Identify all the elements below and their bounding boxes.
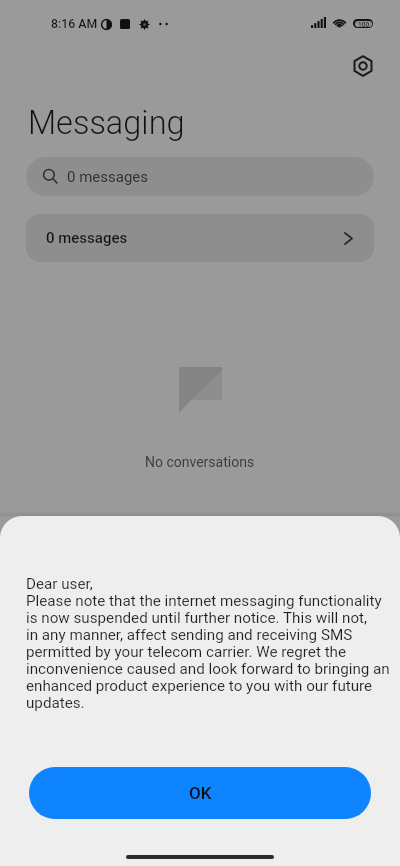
button[interactable]: Settings — [344, 47, 382, 85]
staticText: 8:16 AM — [51, 17, 98, 31]
staticText: No conversations — [145, 454, 255, 470]
staticText: Messaging — [28, 104, 185, 142]
staticText: Dear user, Please note that the internet… — [26, 575, 390, 712]
staticText: OK — [189, 783, 212, 803]
staticText: 0 messages — [46, 229, 128, 247]
button[interactable]: OK — [29, 767, 371, 819]
button[interactable]: 0 messages — [26, 214, 374, 262]
staticText: 100 — [358, 21, 370, 27]
button[interactable]: 0 messages — [26, 157, 374, 196]
staticText: 0 messages — [67, 168, 149, 186]
